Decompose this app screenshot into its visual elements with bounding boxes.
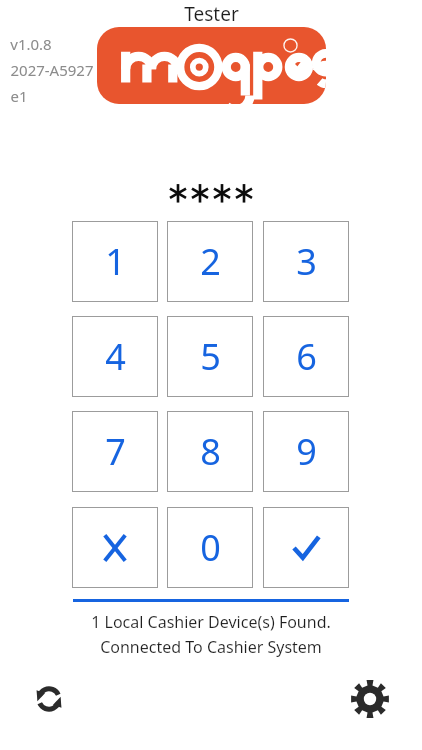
button[interactable]: 9	[263, 411, 349, 492]
button[interactable]: Clear	[72, 507, 158, 588]
button[interactable]: 3	[263, 221, 349, 302]
button[interactable]: 6	[263, 316, 349, 397]
button[interactable]: 0	[167, 507, 253, 588]
staticText: 1 Local Cashier Device(s) Found.	[91, 611, 331, 633]
staticText: Tester	[184, 1, 239, 27]
staticText: 2027-A5927	[10, 60, 94, 80]
button[interactable]: Refresh	[26, 676, 72, 722]
button[interactable]: 4	[72, 316, 158, 397]
staticText: 3	[296, 237, 317, 286]
button[interactable]: magpos logo	[97, 27, 326, 104]
staticText: Connected To Cashier System	[100, 636, 322, 658]
button[interactable]: Settings	[347, 676, 393, 722]
staticText: 1	[105, 237, 126, 286]
button[interactable]: 2	[167, 221, 253, 302]
staticText: 8	[200, 427, 221, 476]
button[interactable]: Confirm	[263, 507, 349, 588]
staticText: 0	[200, 523, 221, 572]
button[interactable]: 8	[167, 411, 253, 492]
button[interactable]: 1	[72, 221, 158, 302]
button[interactable]: 7	[72, 411, 158, 492]
staticText: e1	[10, 86, 28, 106]
staticText: v1.0.8	[10, 34, 52, 54]
button[interactable]: 5	[167, 316, 253, 397]
staticText: 4	[105, 332, 126, 381]
staticText: 9	[296, 427, 317, 476]
staticText: 5	[200, 332, 221, 381]
staticText: 7	[105, 427, 126, 476]
staticText: 6	[296, 332, 317, 381]
staticText: 2	[200, 237, 221, 286]
